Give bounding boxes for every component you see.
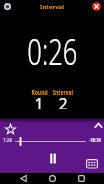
staticText: 0:26 xyxy=(27,27,78,69)
staticText: 2 xyxy=(58,93,68,109)
staticText: -18:34 xyxy=(89,137,101,143)
staticText: 1:26 xyxy=(3,137,12,143)
staticText: Round xyxy=(31,88,48,98)
button[interactable] xyxy=(92,2,101,11)
button[interactable] xyxy=(20,175,27,182)
button[interactable] xyxy=(86,159,98,169)
button[interactable] xyxy=(78,175,85,182)
button[interactable] xyxy=(14,134,88,149)
staticText: Interval xyxy=(40,3,64,11)
button[interactable] xyxy=(47,152,60,165)
button[interactable] xyxy=(49,175,56,182)
staticText: 1 xyxy=(34,93,44,109)
staticText: Interval xyxy=(53,88,73,98)
button[interactable] xyxy=(4,3,11,10)
button[interactable] xyxy=(5,124,16,135)
button[interactable] xyxy=(94,122,103,129)
